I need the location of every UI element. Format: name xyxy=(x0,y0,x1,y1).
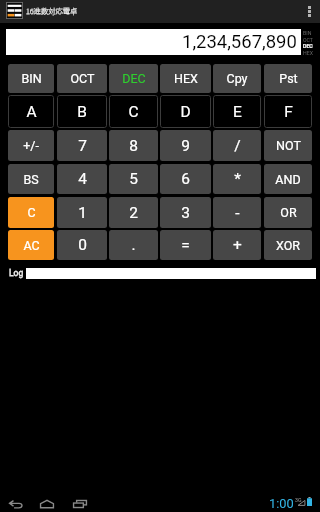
button[interactable]: D xyxy=(160,95,211,128)
staticText: AC xyxy=(23,238,40,253)
button[interactable]: F xyxy=(264,95,312,128)
staticText: 6 xyxy=(181,170,190,188)
staticText: B xyxy=(77,103,87,121)
button[interactable]: BIN xyxy=(8,64,54,93)
staticText: DEC xyxy=(122,71,146,86)
staticText: 3 xyxy=(181,204,190,222)
staticText: / xyxy=(234,137,241,155)
staticText: Pst xyxy=(279,71,298,86)
staticText: DEC xyxy=(303,43,313,49)
staticText: 7 xyxy=(78,137,87,155)
button[interactable]: Value display xyxy=(6,29,301,55)
button[interactable]: NOT xyxy=(264,130,312,161)
button[interactable]: Cpy xyxy=(213,64,261,93)
staticText: HEX xyxy=(303,50,313,56)
button[interactable]: BS xyxy=(8,164,54,194)
button[interactable]: / xyxy=(213,130,261,161)
button[interactable]: Recent apps xyxy=(67,490,93,512)
staticText: Log xyxy=(9,268,24,278)
button[interactable]: 1 xyxy=(57,197,107,228)
staticText: F xyxy=(284,103,293,121)
button[interactable]: E xyxy=(213,95,261,128)
button[interactable]: More options xyxy=(298,0,320,23)
button[interactable]: C xyxy=(109,95,158,128)
button[interactable]: B xyxy=(57,95,107,128)
button[interactable]: - xyxy=(213,197,261,228)
button[interactable]: DEC xyxy=(109,64,158,93)
staticText: XOR xyxy=(276,238,300,253)
staticText: OR xyxy=(280,205,297,220)
button[interactable]: HEX xyxy=(160,64,211,93)
button[interactable]: = xyxy=(160,230,211,260)
staticText: HEX xyxy=(174,71,198,86)
staticText: 1 xyxy=(78,204,87,222)
staticText: D xyxy=(180,103,191,121)
button[interactable]: OCT xyxy=(57,64,107,93)
button[interactable]: Home xyxy=(34,490,60,512)
button[interactable]: Back xyxy=(3,490,29,512)
button[interactable]: 8 xyxy=(109,130,158,161)
staticText: BIN xyxy=(303,30,312,36)
button[interactable]: . xyxy=(109,230,158,260)
staticText: E xyxy=(233,103,242,121)
button[interactable]: 0 xyxy=(57,230,107,260)
staticText: OCT xyxy=(303,37,313,43)
button[interactable]: C xyxy=(8,197,54,228)
button[interactable]: AND xyxy=(264,164,312,194)
staticText: 9 xyxy=(181,137,190,155)
button[interactable]: 7 xyxy=(57,130,107,161)
staticText: 3G xyxy=(295,497,302,503)
button[interactable]: Pst xyxy=(264,64,312,93)
button[interactable]: +/- xyxy=(8,130,54,161)
staticText: 5 xyxy=(129,170,138,188)
staticText: OCT xyxy=(70,71,95,86)
staticText: = xyxy=(181,236,190,254)
button[interactable]: 6 xyxy=(160,164,211,194)
staticText: 1:00 xyxy=(269,496,294,511)
button[interactable]: OR xyxy=(264,197,312,228)
button[interactable]: XOR xyxy=(264,230,312,260)
staticText: + xyxy=(233,236,242,254)
button[interactable]: 9 xyxy=(160,130,211,161)
button[interactable]: 5 xyxy=(109,164,158,194)
staticText: 8 xyxy=(129,137,138,155)
button[interactable]: 2 xyxy=(109,197,158,228)
staticText: BS xyxy=(23,172,39,187)
button[interactable]: + xyxy=(213,230,261,260)
staticText: AND xyxy=(275,172,301,187)
staticText: * xyxy=(234,170,241,188)
staticText: A xyxy=(26,103,37,121)
staticText: . xyxy=(131,236,136,254)
staticText: NOT xyxy=(276,138,301,153)
button[interactable]: AC xyxy=(8,230,54,260)
staticText: 16進数対応電卓 xyxy=(26,6,78,17)
staticText: Cpy xyxy=(226,71,248,86)
button[interactable]: 4 xyxy=(57,164,107,194)
button[interactable]: 3 xyxy=(160,197,211,228)
staticText: C xyxy=(128,103,139,121)
staticText: 4 xyxy=(78,170,87,188)
staticText: 0 xyxy=(78,236,87,254)
staticText: 1,234,567,890 xyxy=(182,31,297,53)
button[interactable]: * xyxy=(213,164,261,194)
button[interactable]: A xyxy=(8,95,54,128)
staticText: - xyxy=(235,204,240,222)
staticText: C xyxy=(27,205,36,220)
staticText: +/- xyxy=(23,138,39,153)
staticText: 2 xyxy=(129,204,138,222)
staticText: BIN xyxy=(21,71,42,86)
